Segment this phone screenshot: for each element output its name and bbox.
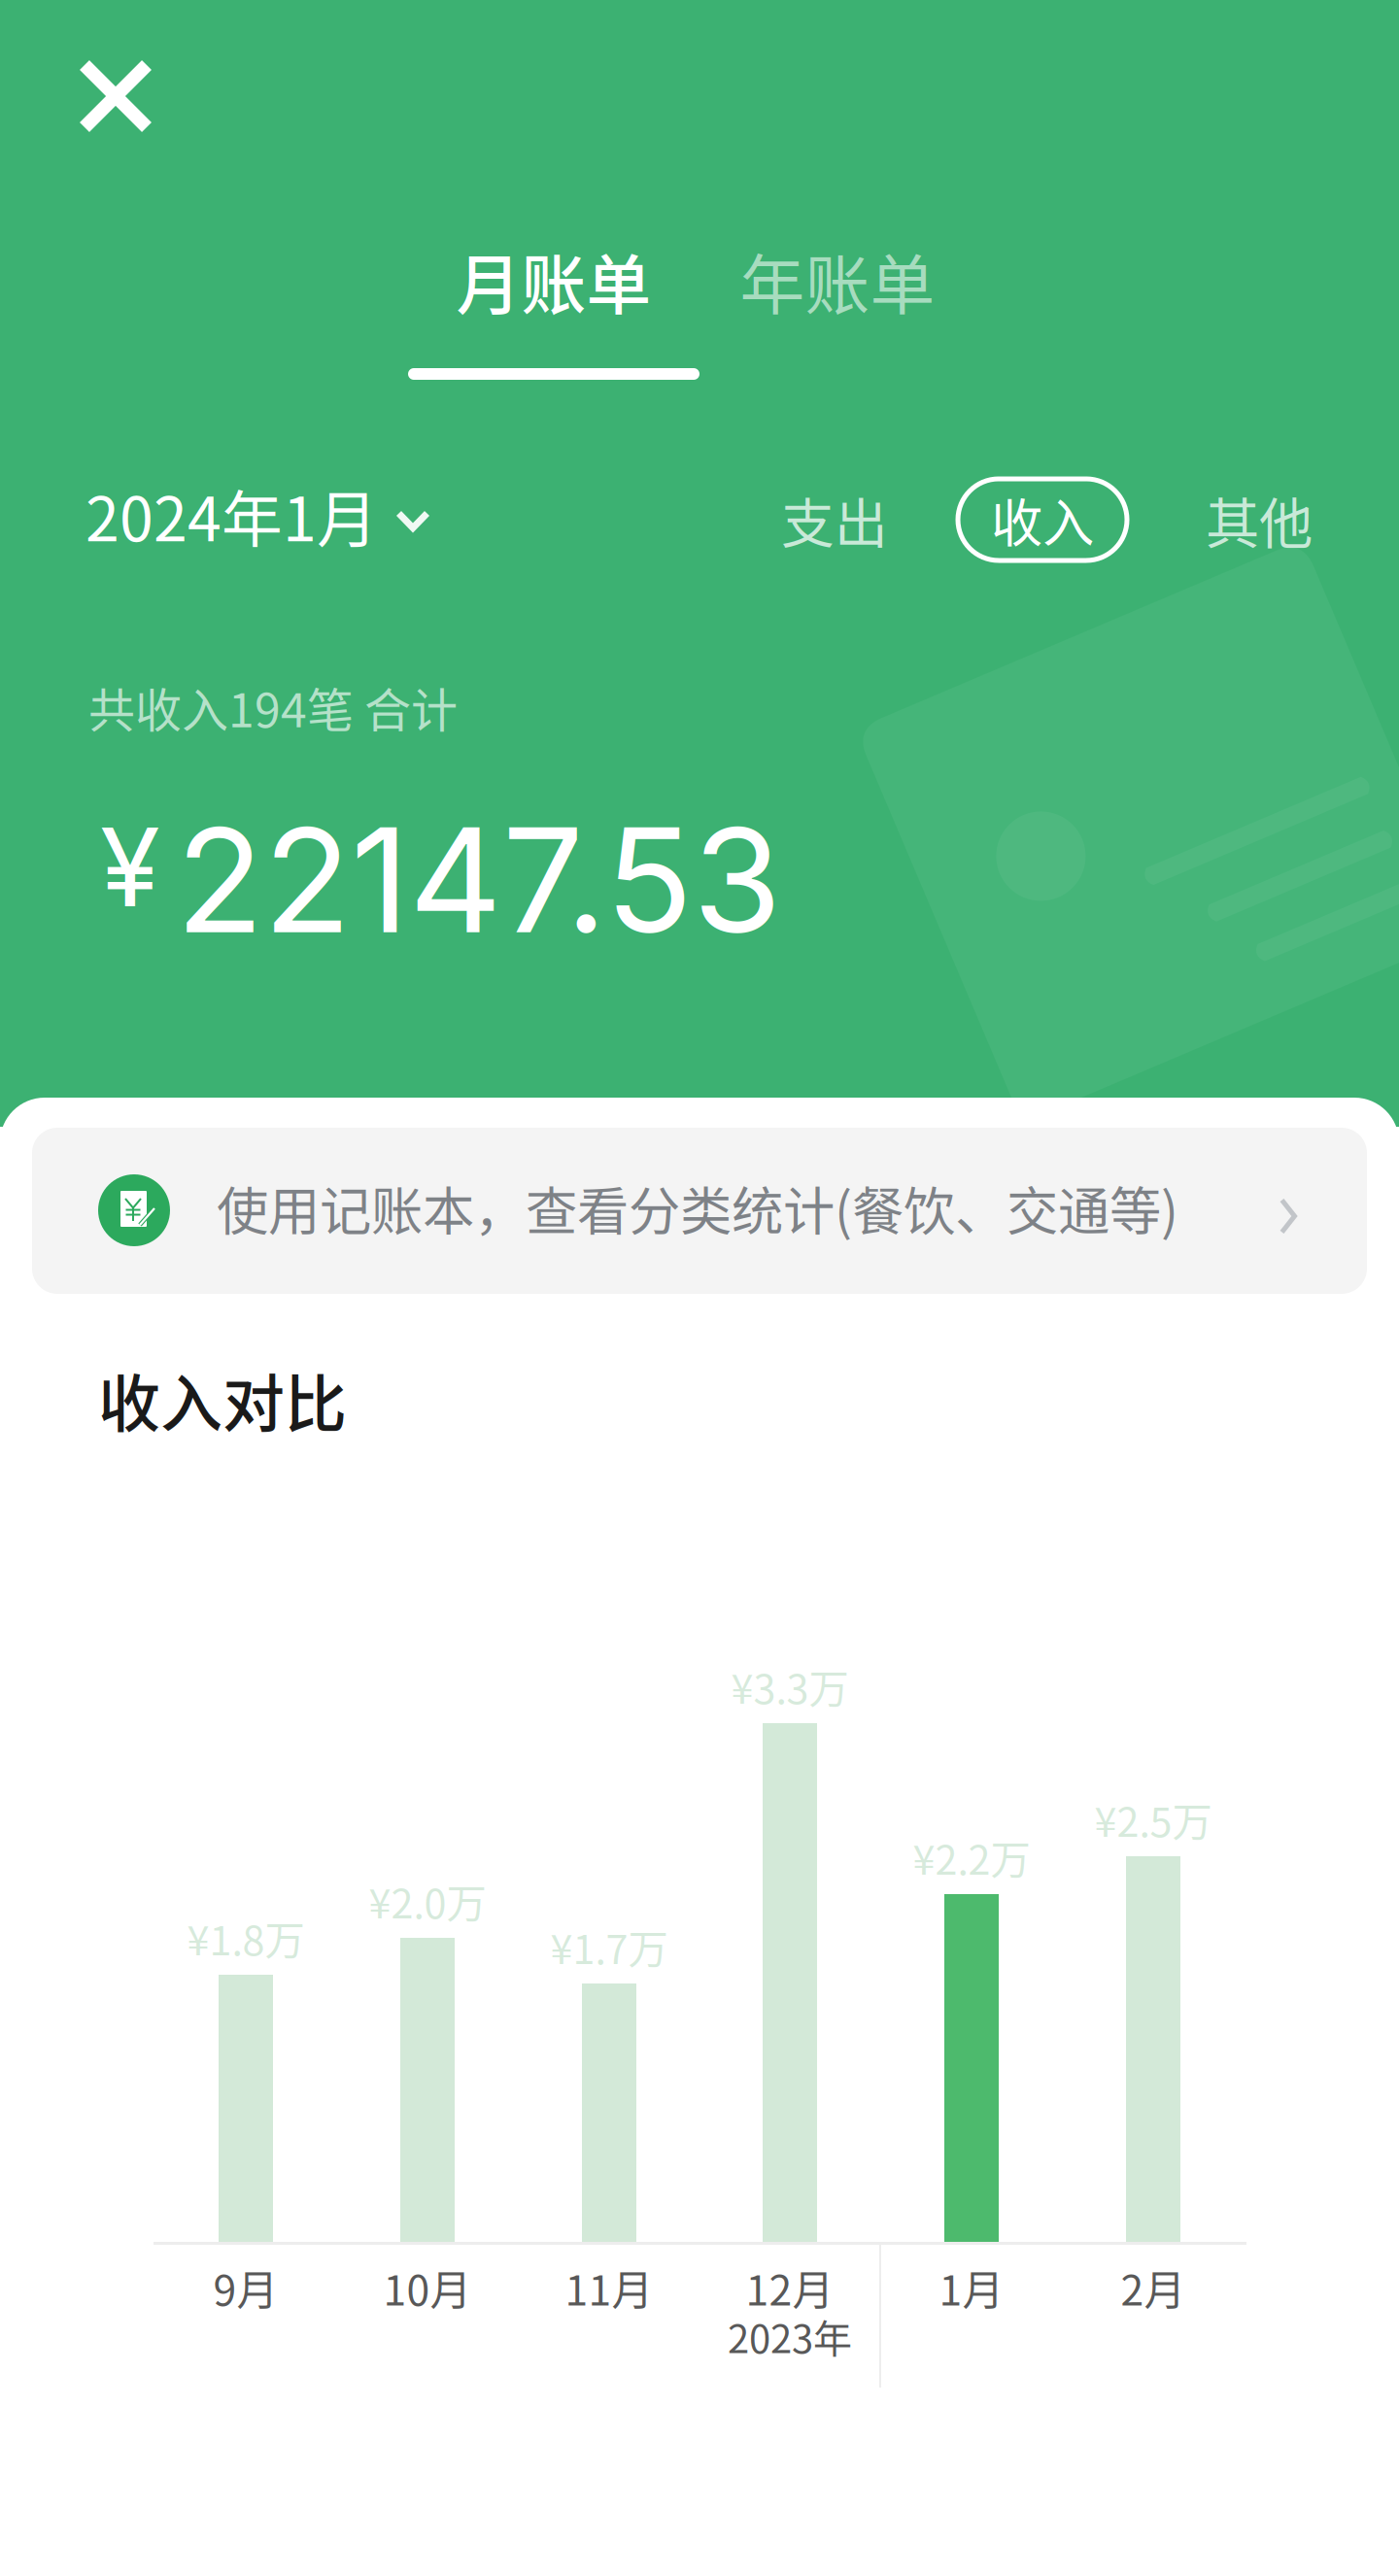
staticText: 10月: [383, 2257, 472, 2318]
button[interactable]: 其他: [1199, 478, 1319, 561]
staticText: 22147.53: [176, 793, 781, 967]
staticText: ¥: [100, 801, 160, 932]
staticText: ¥2.0万: [369, 1872, 486, 1930]
button[interactable]: 年账单: [721, 237, 954, 324]
staticText: 1月: [939, 2257, 1004, 2318]
staticText: 年账单: [740, 234, 935, 328]
button[interactable]: 2024年1月: [85, 473, 430, 557]
staticText: 收入: [991, 482, 1094, 557]
staticText: 2024年1月: [85, 471, 378, 559]
staticText: ¥1.7万: [550, 1918, 668, 1976]
staticText: 9月: [213, 2257, 278, 2318]
staticText: 2月: [1121, 2257, 1186, 2318]
staticText: 12月: [746, 2257, 834, 2318]
staticText: 月账单: [456, 234, 651, 328]
button[interactable]: 收入: [958, 479, 1127, 560]
staticText: ¥2.5万: [1094, 1790, 1212, 1848]
staticText: 使用记账本，查看分类统计(餐饮、交通等): [217, 1170, 1178, 1245]
staticText: 收入对比: [98, 1354, 347, 1444]
staticText: ¥1.8万: [187, 1909, 305, 1967]
button[interactable]: 支出: [769, 478, 900, 561]
staticText: 其他: [1206, 481, 1313, 559]
staticText: 11月: [565, 2257, 653, 2318]
staticText: 支出: [781, 481, 888, 558]
button[interactable]: 关闭: [32, 13, 199, 180]
staticText: 共收入194笔 合计: [88, 673, 458, 741]
staticText: ¥2.2万: [913, 1828, 1030, 1886]
staticText: ¥3.3万: [731, 1657, 849, 1715]
button[interactable]: 月账单: [408, 237, 699, 376]
button[interactable]: 使用记账本，查看分类统计(餐饮、交通等): [32, 1128, 1367, 1294]
staticText: 2023年: [728, 2308, 852, 2364]
